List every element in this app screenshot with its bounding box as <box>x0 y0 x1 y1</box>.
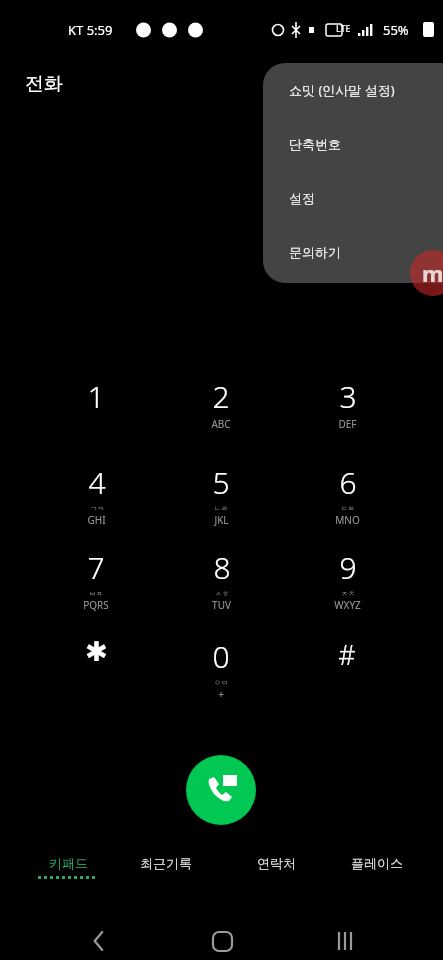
staticText: ㄴㄹ <box>214 504 228 513</box>
staticText: 설정 <box>289 190 315 206</box>
button[interactable]: ✱ <box>38 636 154 720</box>
button[interactable]: Home <box>198 917 246 960</box>
staticText: 55% <box>383 21 409 39</box>
button[interactable]: 단축번호 <box>263 117 443 171</box>
button[interactable]: 최근기록 <box>116 855 216 897</box>
staticText: ㅅㅎ <box>215 589 229 598</box>
button[interactable]: 7 <box>38 547 154 631</box>
staticText: 6 <box>339 462 357 503</box>
staticText: 최근기록 <box>140 855 192 871</box>
staticText: 1 <box>87 376 105 417</box>
staticText: ㄱㅋ <box>90 504 104 513</box>
button[interactable]: 키패드 <box>18 855 118 897</box>
staticText: 7 <box>87 547 105 588</box>
button[interactable]: 6 <box>289 462 405 546</box>
staticText: ㅂㅍ <box>89 589 103 598</box>
button[interactable]: Call <box>186 755 256 825</box>
staticText: 0 <box>212 636 230 677</box>
staticText: 전화 <box>25 72 63 96</box>
button[interactable]: 설정 <box>263 171 443 225</box>
staticText: 키패드 <box>49 855 88 871</box>
staticText: WXYZ <box>334 598 361 612</box>
button[interactable]: 9 <box>289 547 405 631</box>
button[interactable]: 3 <box>289 376 405 460</box>
button[interactable]: 8 <box>163 547 279 631</box>
button[interactable]: 5 <box>163 462 279 546</box>
button[interactable]: 0 <box>163 636 279 720</box>
staticText: DEF <box>338 417 357 431</box>
staticText: 쇼밋 (인사말 설정) <box>289 81 395 99</box>
staticText: + <box>218 687 224 701</box>
button[interactable]: 연락처 <box>226 855 326 897</box>
staticText: 3 <box>339 376 357 417</box>
button[interactable]: # <box>289 636 405 720</box>
staticText: 4 <box>88 462 106 503</box>
staticText: ㅇㅁ <box>214 678 228 687</box>
button[interactable]: 4 <box>38 462 154 546</box>
staticText: JKL <box>214 513 229 527</box>
staticText: ㅈㅊ <box>341 589 355 598</box>
staticText: GHI <box>87 513 106 527</box>
button[interactable]: Recents <box>322 917 370 960</box>
button[interactable]: 플레이스 <box>327 855 427 897</box>
button[interactable]: 1 <box>38 376 154 460</box>
staticText: 5 <box>212 462 230 503</box>
staticText: MNO <box>335 513 360 527</box>
staticText: 8 <box>213 547 231 588</box>
staticText: # <box>338 636 356 673</box>
staticText: LTE <box>336 22 351 34</box>
staticText: 플레이스 <box>351 855 403 871</box>
staticText: ✱ <box>85 636 108 667</box>
staticText: TUV <box>212 598 231 612</box>
staticText: KT 5:59 <box>68 21 113 39</box>
button[interactable]: Floating app icon <box>410 250 443 296</box>
button[interactable]: 2 <box>163 376 279 460</box>
staticText: ㄷㅌ <box>341 504 355 513</box>
staticText: PQRS <box>83 598 109 612</box>
staticText: 연락처 <box>257 855 296 871</box>
staticText: 9 <box>339 547 357 588</box>
staticText: 문의하기 <box>289 244 341 260</box>
button[interactable]: Back <box>75 917 123 960</box>
staticText: ABC <box>211 417 231 431</box>
staticText: 2 <box>212 376 230 417</box>
staticText: m <box>422 258 443 288</box>
button[interactable]: 문의하기 <box>263 225 443 279</box>
staticText: 단축번호 <box>289 136 341 152</box>
button[interactable]: 쇼밋 (인사말 설정) <box>263 63 443 117</box>
